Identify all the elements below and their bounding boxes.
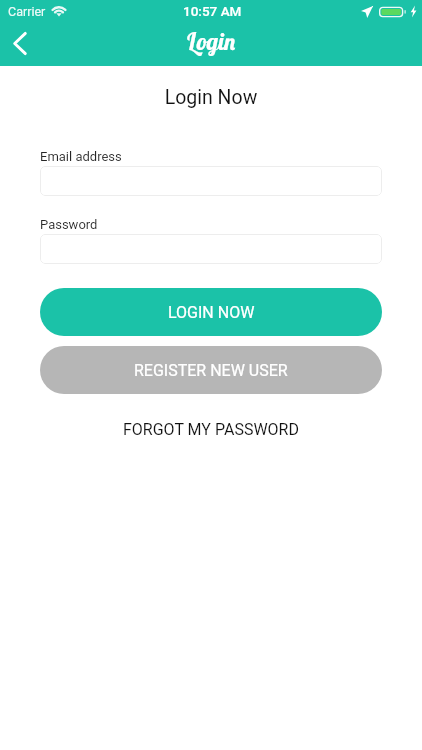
staticText: FORGOT MY PASSWORD bbox=[123, 420, 299, 439]
staticText: REGISTER NEW USER bbox=[134, 361, 288, 380]
button[interactable] bbox=[40, 234, 382, 264]
staticText: 10:57 AM bbox=[183, 3, 242, 19]
staticText: Login bbox=[186, 27, 237, 56]
other: Battery bbox=[379, 6, 406, 18]
staticText: LOGIN NOW bbox=[168, 303, 255, 322]
staticText: Carrier bbox=[8, 4, 46, 19]
other: Location bbox=[361, 6, 373, 18]
staticText: Email address bbox=[40, 149, 122, 164]
button[interactable]: REGISTER NEW USER bbox=[40, 346, 382, 394]
button[interactable] bbox=[40, 166, 382, 196]
button[interactable]: LOGIN NOW bbox=[40, 288, 382, 336]
other: Wi-Fi bbox=[50, 3, 68, 16]
staticText: Password bbox=[40, 217, 98, 232]
button[interactable]: FORGOT MY PASSWORD bbox=[0, 414, 422, 444]
staticText: Login Now bbox=[0, 86, 422, 109]
button[interactable]: Back bbox=[0, 23, 40, 63]
